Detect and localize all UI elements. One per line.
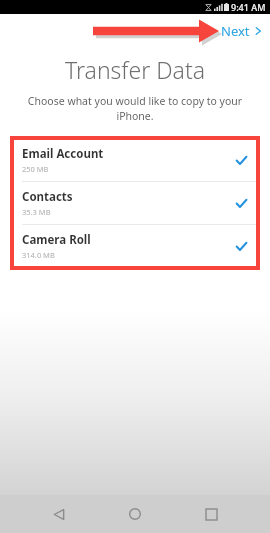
staticText: Contacts [22,189,73,205]
button[interactable]: Back [42,497,76,531]
staticText: Email Account [22,146,104,162]
staticText: Camera Roll [22,232,91,248]
staticText: Next [221,22,250,40]
staticText: 314.0 MB [22,250,55,260]
button[interactable]: Next [213,20,270,42]
button[interactable]: Contacts [13,182,257,224]
button[interactable]: Email Account [13,139,257,181]
button[interactable]: Recent apps [194,497,228,531]
button[interactable]: Camera Roll [13,225,257,267]
staticText: Transfer Data [0,54,270,85]
staticText: 250 MB [22,164,49,174]
staticText: 35.3 MB [22,207,51,217]
button[interactable]: Home [118,497,152,531]
staticText: Choose what you would like to copy to yo… [12,94,258,123]
staticText: 9:41 AM [231,1,266,13]
